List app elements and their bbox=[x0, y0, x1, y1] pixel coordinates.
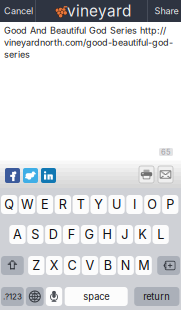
button[interactable]: E bbox=[37, 195, 53, 214]
button[interactable]: V bbox=[82, 256, 98, 275]
button[interactable]: Z bbox=[28, 256, 44, 275]
button[interactable]: A bbox=[9, 225, 26, 244]
staticText: D bbox=[49, 227, 58, 242]
button[interactable]: C bbox=[64, 256, 80, 275]
button[interactable]: Email bbox=[158, 166, 173, 183]
button[interactable]: return bbox=[134, 287, 179, 306]
button[interactable]: H bbox=[99, 225, 115, 244]
button[interactable]: I bbox=[126, 195, 143, 214]
button[interactable]: P bbox=[162, 195, 178, 214]
button[interactable]: O bbox=[144, 195, 160, 214]
staticText: I bbox=[133, 197, 136, 212]
button[interactable]: Share on LinkedIn bbox=[41, 168, 56, 183]
button[interactable]: J bbox=[117, 225, 133, 244]
button[interactable]: Cancel bbox=[0, 0, 37, 22]
staticText: M bbox=[138, 258, 149, 273]
staticText: L bbox=[157, 227, 164, 242]
staticText: C bbox=[67, 258, 76, 273]
button[interactable]: L bbox=[152, 225, 169, 244]
staticText: O bbox=[147, 197, 157, 212]
button[interactable]: F bbox=[63, 225, 79, 244]
button[interactable]: B bbox=[100, 256, 116, 275]
staticText: R bbox=[59, 197, 67, 212]
staticText: series bbox=[4, 49, 30, 60]
button[interactable]: N bbox=[118, 256, 134, 275]
staticText: .?123 bbox=[3, 292, 22, 301]
button[interactable]: Y bbox=[90, 195, 107, 214]
button[interactable]: Shift bbox=[1, 256, 24, 275]
button[interactable]: W bbox=[19, 195, 35, 214]
button[interactable]: Q bbox=[1, 195, 17, 214]
staticText: Cancel bbox=[4, 5, 33, 16]
staticText: B bbox=[104, 258, 112, 273]
staticText: E bbox=[41, 197, 49, 212]
button[interactable]: Share on Facebook bbox=[5, 168, 20, 183]
staticText: A bbox=[13, 227, 22, 242]
staticText: F bbox=[68, 227, 75, 242]
button[interactable]: S bbox=[27, 225, 43, 244]
staticText: space bbox=[83, 291, 109, 302]
button[interactable]: D bbox=[45, 225, 61, 244]
button[interactable]: Delete bbox=[157, 256, 180, 275]
button[interactable]: G bbox=[81, 225, 97, 244]
button[interactable]: Share bbox=[150, 0, 181, 22]
staticText: J bbox=[121, 227, 128, 242]
staticText: H bbox=[102, 227, 111, 242]
button[interactable]: M bbox=[135, 256, 152, 275]
staticText: Z bbox=[32, 258, 40, 273]
staticText: G bbox=[84, 227, 93, 242]
staticText: Good And Beautiful God Series http:// bbox=[4, 25, 166, 36]
staticText: Q bbox=[4, 197, 14, 212]
staticText: W bbox=[21, 197, 33, 212]
staticText: T bbox=[77, 197, 85, 212]
staticText: X bbox=[50, 258, 59, 273]
button[interactable]: X bbox=[46, 256, 62, 275]
button[interactable]: Share on Twitter bbox=[23, 168, 38, 183]
button[interactable]: K bbox=[135, 225, 151, 244]
staticText: vineyardnorth.com/good-beautiful-god- bbox=[4, 37, 173, 48]
staticText: 65 bbox=[161, 147, 171, 156]
staticText: Share bbox=[154, 5, 178, 16]
button[interactable]: R bbox=[55, 195, 71, 214]
staticText: U bbox=[112, 197, 121, 212]
button[interactable]: .?123 bbox=[1, 287, 24, 306]
staticText: Y bbox=[94, 197, 103, 212]
button[interactable]: Next keyboard bbox=[26, 287, 44, 306]
button[interactable]: space bbox=[65, 287, 128, 306]
staticText: vineyard bbox=[67, 2, 131, 20]
button[interactable]: Print bbox=[139, 166, 154, 183]
button[interactable]: Dictation bbox=[46, 287, 62, 306]
staticText: N bbox=[121, 258, 131, 273]
staticText: V bbox=[85, 258, 94, 273]
button[interactable]: U bbox=[108, 195, 125, 214]
staticText: return bbox=[143, 291, 170, 302]
staticText: P bbox=[166, 197, 174, 212]
staticText: K bbox=[138, 227, 147, 242]
button[interactable]: T bbox=[73, 195, 89, 214]
staticText: S bbox=[31, 227, 39, 242]
